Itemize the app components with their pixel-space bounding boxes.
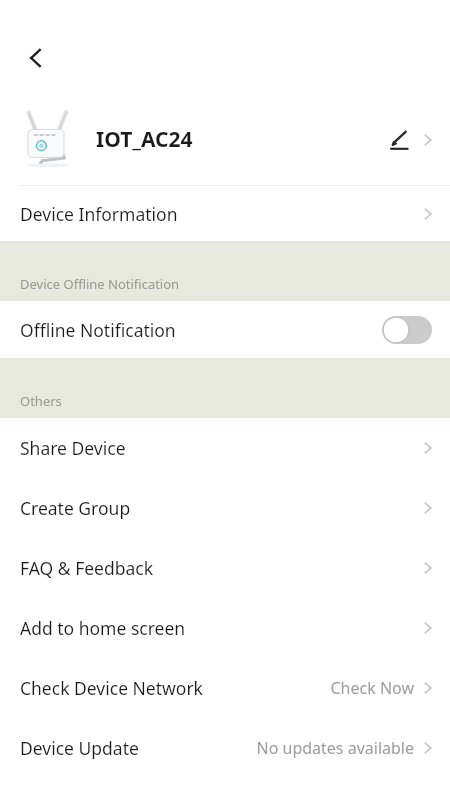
button[interactable]: Device Update <box>0 718 450 778</box>
staticText: FAQ & Feedback <box>20 556 154 580</box>
button[interactable]: IOT_AC24 <box>0 94 450 185</box>
staticText: No updates available <box>256 737 414 759</box>
button[interactable]: Offline Notification <box>0 301 450 358</box>
button[interactable]: Add to home screen <box>0 598 450 658</box>
button[interactable]: Device Information <box>0 186 450 241</box>
button[interactable]: FAQ & Feedback <box>0 538 450 598</box>
button[interactable]: Check Device Network <box>0 658 450 718</box>
staticText: Device Offline Notification <box>20 275 180 293</box>
button[interactable]: Back <box>12 34 60 82</box>
staticText: Offline Notification <box>20 318 176 342</box>
button[interactable]: Offline Notification toggle, off <box>382 316 432 344</box>
staticText: IOT_AC24 <box>96 125 193 154</box>
button[interactable]: Share Device <box>0 418 450 478</box>
staticText: Create Group <box>20 496 131 520</box>
staticText: Device Information <box>20 202 178 226</box>
button[interactable]: Rename device <box>380 121 418 159</box>
staticText: Add to home screen <box>20 616 186 640</box>
button[interactable]: Create Group <box>0 478 450 538</box>
staticText: Share Device <box>20 436 126 460</box>
staticText: Device Update <box>20 736 139 760</box>
staticText: Check Device Network <box>20 676 203 700</box>
staticText: Others <box>20 392 62 410</box>
staticText: Check Now <box>330 677 414 699</box>
